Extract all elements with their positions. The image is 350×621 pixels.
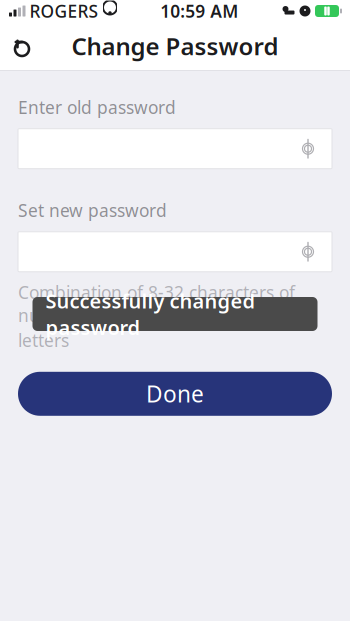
- staticText: Successfully changed password: [45, 287, 255, 340]
- staticText: 10:59 AM: [160, 0, 238, 22]
- staticText: Combination of 8-32 characters of number…: [18, 281, 295, 327]
- staticText: Set new password: [18, 199, 167, 222]
- staticText: Done: [146, 379, 204, 409]
- staticText: ROGERS: [29, 0, 98, 22]
- staticText: Change Password: [71, 30, 278, 62]
- staticText: letters: [18, 329, 69, 352]
- button[interactable]: Done: [18, 372, 332, 416]
- staticText: Enter old password: [18, 96, 176, 119]
- button[interactable]: Back: [0, 24, 44, 68]
